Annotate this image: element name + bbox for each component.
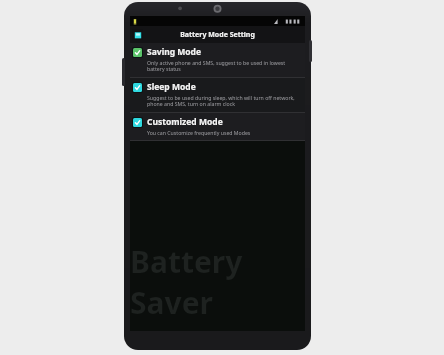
staticText: You can Customize frequently used Modes [147,129,251,136]
staticText: Battery Saver [130,241,305,323]
other: Toggle Sleep Mode [132,82,143,93]
button[interactable]: Toggle Customized Mode [130,113,305,140]
staticText: Battery Mode Setting [180,30,255,40]
staticText: Suggest to be used during sleep, which w… [147,94,300,108]
staticText: Customized Mode [147,116,223,128]
other: Toggle Saving Mode [132,47,143,58]
other: App icon [132,29,143,40]
other: Toggle Customized Mode [132,117,143,128]
button[interactable]: Toggle Sleep Mode [130,78,305,112]
staticText: Only active phone and SMS, suggest to be… [147,59,300,73]
staticText: Saving Mode [147,46,202,58]
staticText: Sleep Mode [147,81,196,93]
button[interactable]: Toggle Saving Mode [130,43,305,77]
